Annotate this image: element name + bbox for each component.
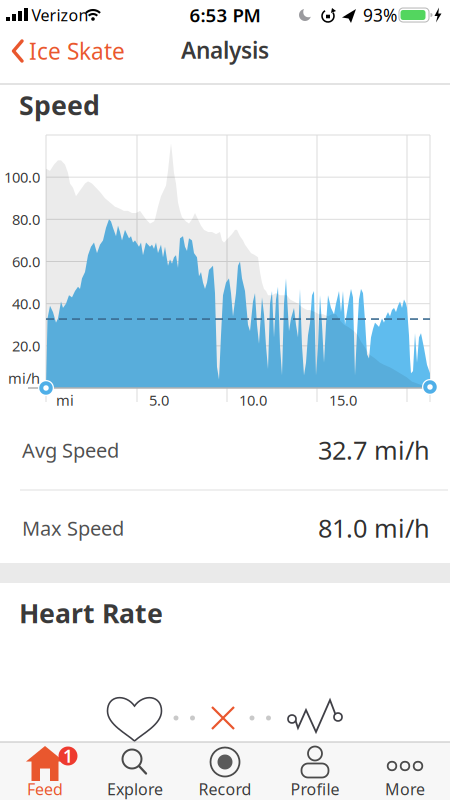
button[interactable]: Profile — [270, 743, 360, 800]
staticText: Explore — [107, 778, 163, 800]
staticText: 60.0 — [12, 252, 40, 271]
staticText: Analysis — [181, 35, 269, 65]
staticText: mi — [56, 390, 74, 410]
button[interactable]: Record — [180, 743, 270, 800]
button[interactable]: Ice Skate — [12, 29, 152, 73]
staticText: 40.0 — [12, 294, 40, 313]
staticText: Record — [198, 778, 251, 800]
staticText: 93% — [363, 3, 397, 26]
button[interactable]: Explore — [90, 743, 180, 800]
staticText: 15.0 — [329, 390, 357, 410]
staticText: mi/h — [8, 368, 40, 388]
staticText: 20.0 — [12, 336, 40, 356]
staticText: Feed — [27, 778, 63, 800]
button[interactable]: 1 — [0, 743, 90, 800]
staticText: More — [385, 778, 425, 800]
staticText: Speed — [19, 87, 100, 123]
staticText: 10.0 — [239, 390, 267, 410]
staticText: 100.0 — [4, 167, 40, 187]
staticText: Avg Speed — [22, 437, 119, 463]
staticText: 6:53 PM — [189, 3, 260, 27]
staticText: 1 — [63, 744, 73, 767]
staticText: 80.0 — [12, 210, 40, 229]
staticText: Max Speed — [22, 515, 124, 541]
staticText: 32.7 mi/h — [318, 433, 430, 467]
staticText: Verizon — [31, 4, 88, 26]
staticText: Heart Rate — [19, 595, 163, 631]
staticText: 81.0 mi/h — [318, 511, 430, 545]
staticText: Ice Skate — [29, 36, 125, 66]
staticText: Profile — [290, 778, 339, 800]
button[interactable]: More — [360, 743, 450, 800]
staticText: 5.0 — [149, 390, 169, 410]
